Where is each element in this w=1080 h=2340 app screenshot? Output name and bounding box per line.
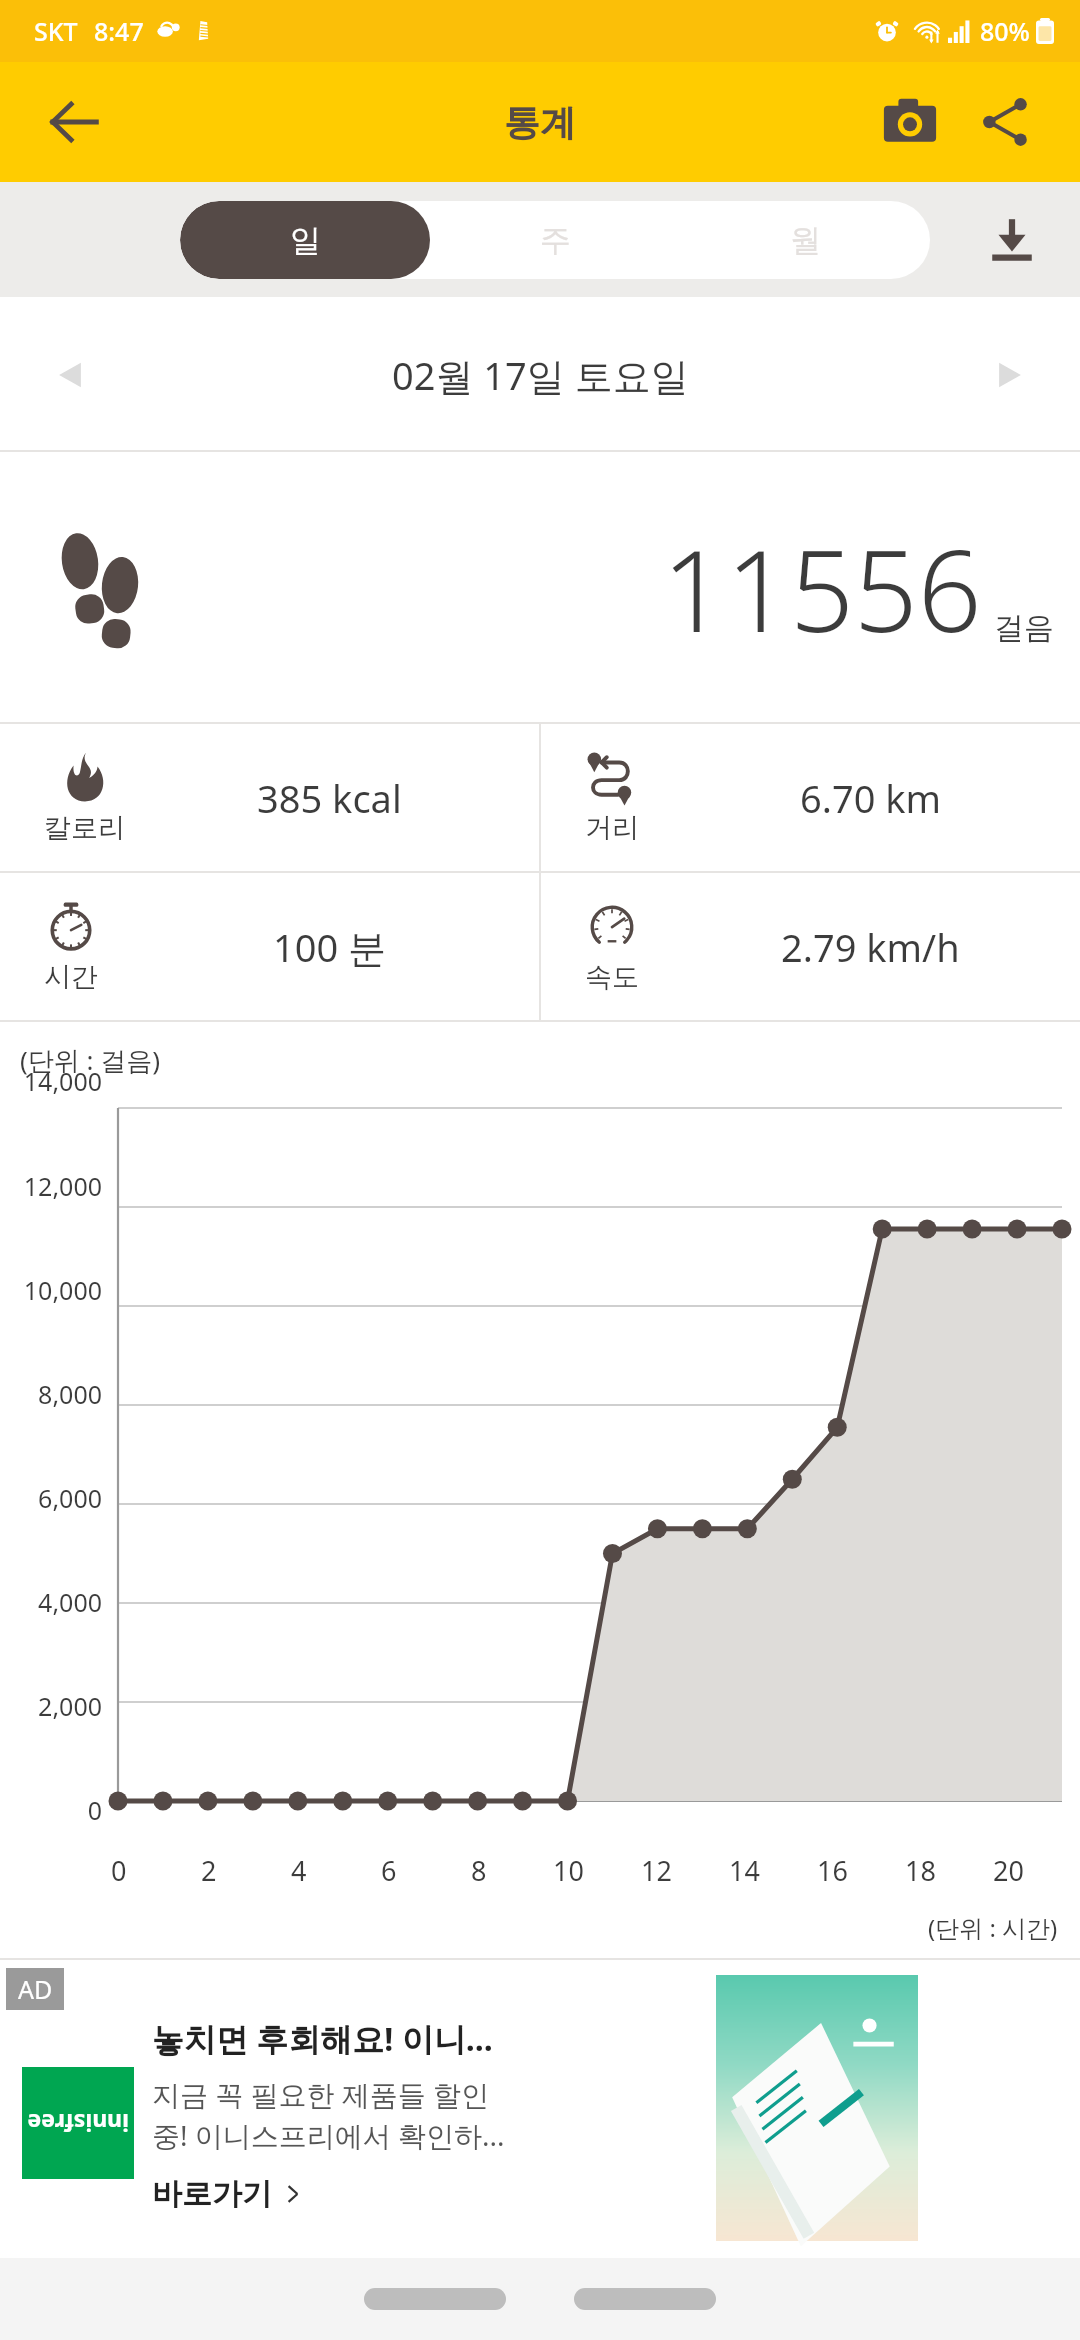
staticText: 14,000 bbox=[0, 1064, 102, 1098]
button[interactable]: Share bbox=[958, 74, 1054, 170]
button[interactable]: 거리 bbox=[541, 724, 1080, 871]
staticText: 바로가기 bbox=[152, 2175, 272, 2213]
staticText: SKT bbox=[34, 14, 78, 48]
staticText: 80% bbox=[980, 14, 1030, 48]
staticText: 6,000 bbox=[0, 1481, 102, 1515]
staticText: 걸음 bbox=[994, 609, 1054, 647]
staticText: 통계 bbox=[504, 100, 576, 145]
button[interactable]: Next day bbox=[960, 325, 1060, 425]
staticText: 주 bbox=[540, 221, 571, 260]
staticText: 2.79 km/h bbox=[781, 921, 960, 973]
staticText: 시간 bbox=[44, 960, 98, 994]
button[interactable]: Back bbox=[574, 2288, 716, 2310]
staticText: 지금 꼭 필요한 제품들 할인 중! 이니스프리에서 확인하... bbox=[152, 2075, 505, 2155]
staticText: 0 bbox=[0, 1793, 102, 1827]
staticText: 18 bbox=[905, 1852, 936, 1889]
staticText: AD bbox=[18, 1972, 53, 2006]
button[interactable]: 주 bbox=[430, 201, 680, 279]
staticText: (단위 : 걸음) bbox=[20, 1042, 161, 1078]
staticText: 02월 17일 토요일 bbox=[392, 349, 689, 401]
staticText: 6 bbox=[381, 1852, 397, 1889]
button[interactable]: Previous day bbox=[20, 325, 120, 425]
button[interactable]: 속도 bbox=[541, 873, 1080, 1020]
staticText: innisfree bbox=[27, 2108, 129, 2139]
button[interactable]: 칼로리 bbox=[0, 724, 539, 871]
staticText: 8:47 bbox=[94, 14, 144, 48]
staticText: 20 bbox=[993, 1852, 1024, 1889]
staticText: 0 bbox=[111, 1852, 127, 1889]
staticText: 일 bbox=[290, 221, 321, 260]
staticText: 385 kcal bbox=[257, 772, 402, 824]
button[interactable]: Camera bbox=[862, 74, 958, 170]
staticText: 11556 bbox=[662, 512, 982, 665]
staticText: 14 bbox=[729, 1852, 760, 1889]
staticText: 거리 bbox=[585, 811, 639, 845]
staticText: 6.70 km bbox=[800, 772, 942, 824]
button[interactable]: 월 bbox=[680, 201, 930, 279]
staticText: 12 bbox=[641, 1852, 672, 1889]
staticText: 4 bbox=[291, 1852, 307, 1889]
staticText: 10,000 bbox=[0, 1273, 102, 1307]
staticText: 칼로리 bbox=[44, 811, 125, 845]
button[interactable]: Back bbox=[28, 76, 120, 168]
staticText: 8 bbox=[471, 1852, 487, 1889]
staticText: 10 bbox=[553, 1852, 584, 1889]
staticText: 월 bbox=[790, 221, 821, 260]
staticText: 16 bbox=[817, 1852, 848, 1889]
staticText: 8,000 bbox=[0, 1377, 102, 1411]
staticText: 12,000 bbox=[0, 1169, 102, 1203]
staticText: 놓치면 후회해요! 이니... bbox=[152, 2017, 493, 2061]
staticText: 속도 bbox=[585, 960, 639, 994]
button[interactable]: 시간 bbox=[0, 873, 539, 1020]
button[interactable]: 일 bbox=[180, 201, 430, 279]
staticText: (단위 : 시간) bbox=[928, 1911, 1058, 1944]
button[interactable]: Recents bbox=[364, 2288, 506, 2310]
button[interactable]: AD bbox=[0, 1958, 1080, 2258]
staticText: 100 분 bbox=[273, 921, 387, 973]
staticText: 4,000 bbox=[0, 1585, 102, 1619]
button[interactable]: Download bbox=[962, 190, 1062, 290]
staticText: 2,000 bbox=[0, 1689, 102, 1723]
staticText: 2 bbox=[201, 1852, 217, 1889]
